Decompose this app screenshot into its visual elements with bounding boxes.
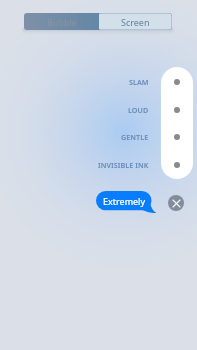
staticText: INVISIBLE INK — [98, 160, 149, 170]
staticText: GENTLE — [121, 132, 149, 142]
button[interactable]: INVISIBLE INK — [60, 156, 149, 174]
staticText: Screen — [121, 16, 150, 28]
button[interactable]: SLAM — [161, 68, 193, 96]
staticText: SLAM — [129, 77, 149, 87]
staticText: Extremely — [103, 195, 146, 207]
button[interactable]: GENTLE — [161, 123, 193, 151]
button[interactable]: Bubble — [24, 13, 99, 30]
button[interactable]: SLAM — [60, 73, 149, 91]
button[interactable]: INVISIBLE INK — [161, 151, 193, 179]
button[interactable]: LOUD — [60, 101, 149, 119]
button[interactable]: GENTLE — [60, 128, 149, 146]
staticText: Bubble — [47, 16, 77, 28]
button[interactable]: LOUD — [161, 96, 193, 124]
button[interactable]: Close — [168, 195, 184, 211]
staticText: LOUD — [128, 105, 149, 115]
button[interactable]: Extremely — [96, 191, 155, 213]
button[interactable]: Screen — [98, 13, 172, 30]
